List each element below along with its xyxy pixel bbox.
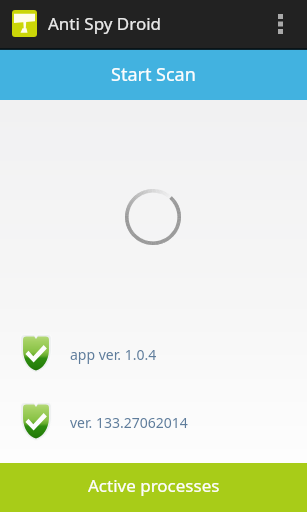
staticText: Anti Spy Droid [48,12,162,35]
button[interactable]: Start Scan [0,50,307,100]
button[interactable]: ver. 133.27062014 [0,402,307,442]
staticText: Start Scan [111,62,196,87]
button[interactable]: More options [254,0,307,48]
staticText: ver. 133.27062014 [70,413,188,432]
button[interactable]: app ver. 1.0.4 [0,334,307,374]
staticText: app ver. 1.0.4 [70,345,157,364]
button[interactable]: Active processes [0,463,307,512]
staticText: Active processes [88,474,220,497]
